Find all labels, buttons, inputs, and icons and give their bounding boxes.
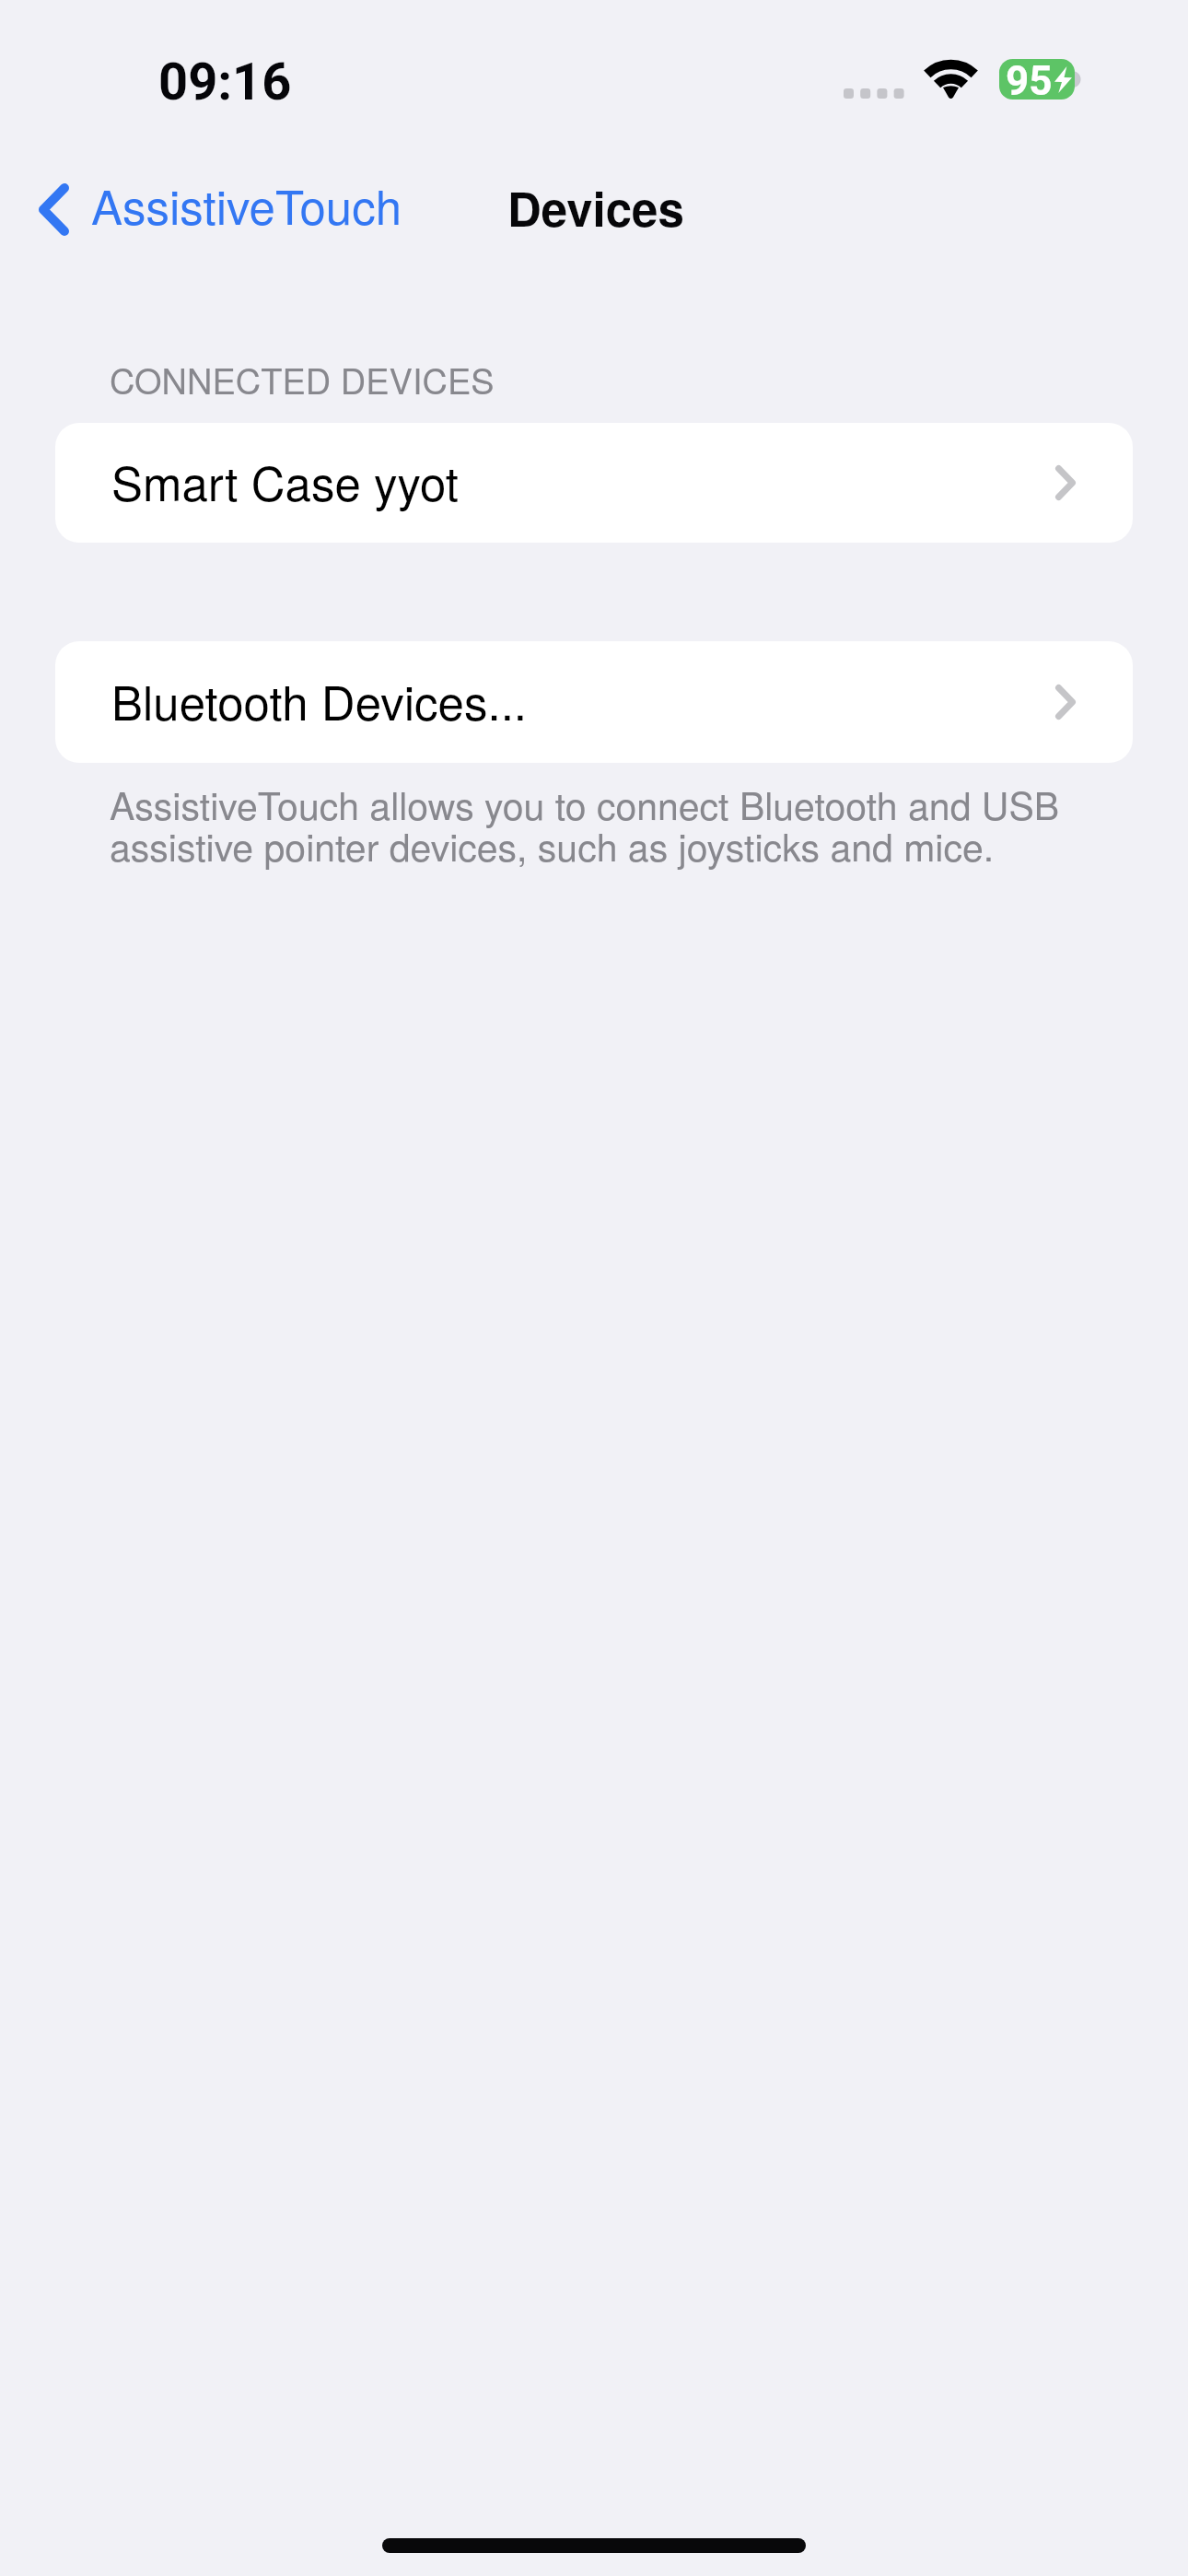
staticText: AssistiveTouch <box>91 170 402 238</box>
button[interactable]: Bluetooth Devices... <box>55 641 1133 763</box>
button[interactable]: Smart Case yyot <box>55 423 1133 543</box>
staticText: AssistiveTouch allows you to connect Blu… <box>110 777 1141 872</box>
staticText: Devices <box>507 174 684 241</box>
other: Cellular signal <box>844 88 904 99</box>
staticText: Smart Case yyot <box>111 447 459 514</box>
button[interactable]: Back to AssistiveTouch <box>24 168 419 251</box>
staticText: 09:16 <box>158 52 292 112</box>
staticText: Bluetooth Devices... <box>111 666 527 733</box>
other: Wi-Fi <box>921 57 981 100</box>
staticText: CONNECTED DEVICES <box>110 354 495 404</box>
other: Battery 95 percent, charging <box>999 59 1087 114</box>
staticText: 95 <box>1006 57 1053 105</box>
